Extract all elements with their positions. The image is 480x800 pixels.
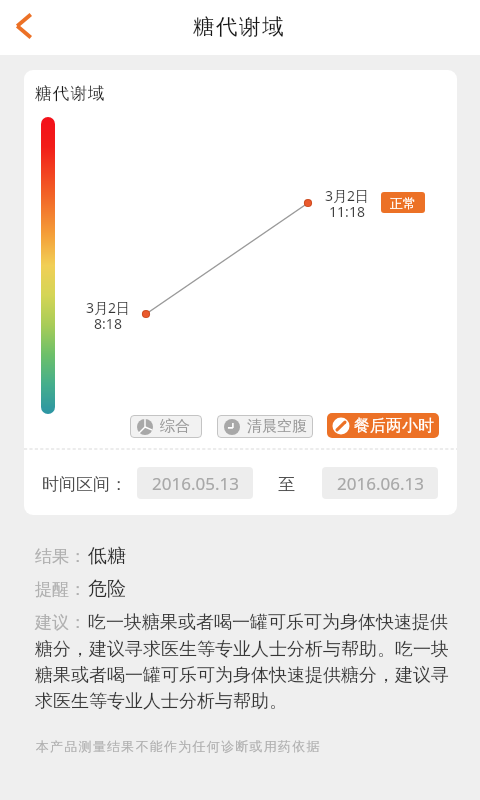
staticText: 建议： 吃一块糖果或者喝一罐可乐可为身体快速提供糖分，建议寻求医生等专业人士分析…: [35, 611, 455, 712]
button[interactable]: 2016.05.13: [137, 467, 253, 499]
staticText: 餐后两小时: [354, 416, 434, 436]
staticText: 至: [278, 474, 295, 495]
staticText: 糖代谢域: [35, 83, 106, 104]
button[interactable]: Back: [2, 4, 48, 50]
button[interactable]: 2016.06.13: [322, 467, 438, 499]
staticText: 2016.05.13: [152, 472, 239, 495]
staticText: 本产品测量结果不能作为任何诊断或用药依据: [35, 738, 320, 754]
staticText: 3月2日 11:18: [321, 186, 373, 221]
staticText: 2016.06.13: [337, 472, 424, 495]
staticText: 清晨空腹: [247, 417, 307, 436]
staticText: 时间区间：: [42, 474, 127, 495]
staticText: 综合: [160, 417, 190, 436]
button[interactable]: 餐后两小时: [327, 413, 439, 438]
button[interactable]: 综合: [130, 415, 202, 438]
staticText: 糖代谢域: [193, 13, 286, 40]
staticText: 正常: [390, 195, 416, 211]
button[interactable]: 清晨空腹: [217, 415, 313, 438]
button[interactable]: 正常: [381, 192, 425, 213]
staticText: 提醒： 危险: [35, 577, 127, 601]
staticText: 结果： 低糖: [35, 544, 127, 568]
staticText: 3月2日 8:18: [82, 298, 134, 333]
